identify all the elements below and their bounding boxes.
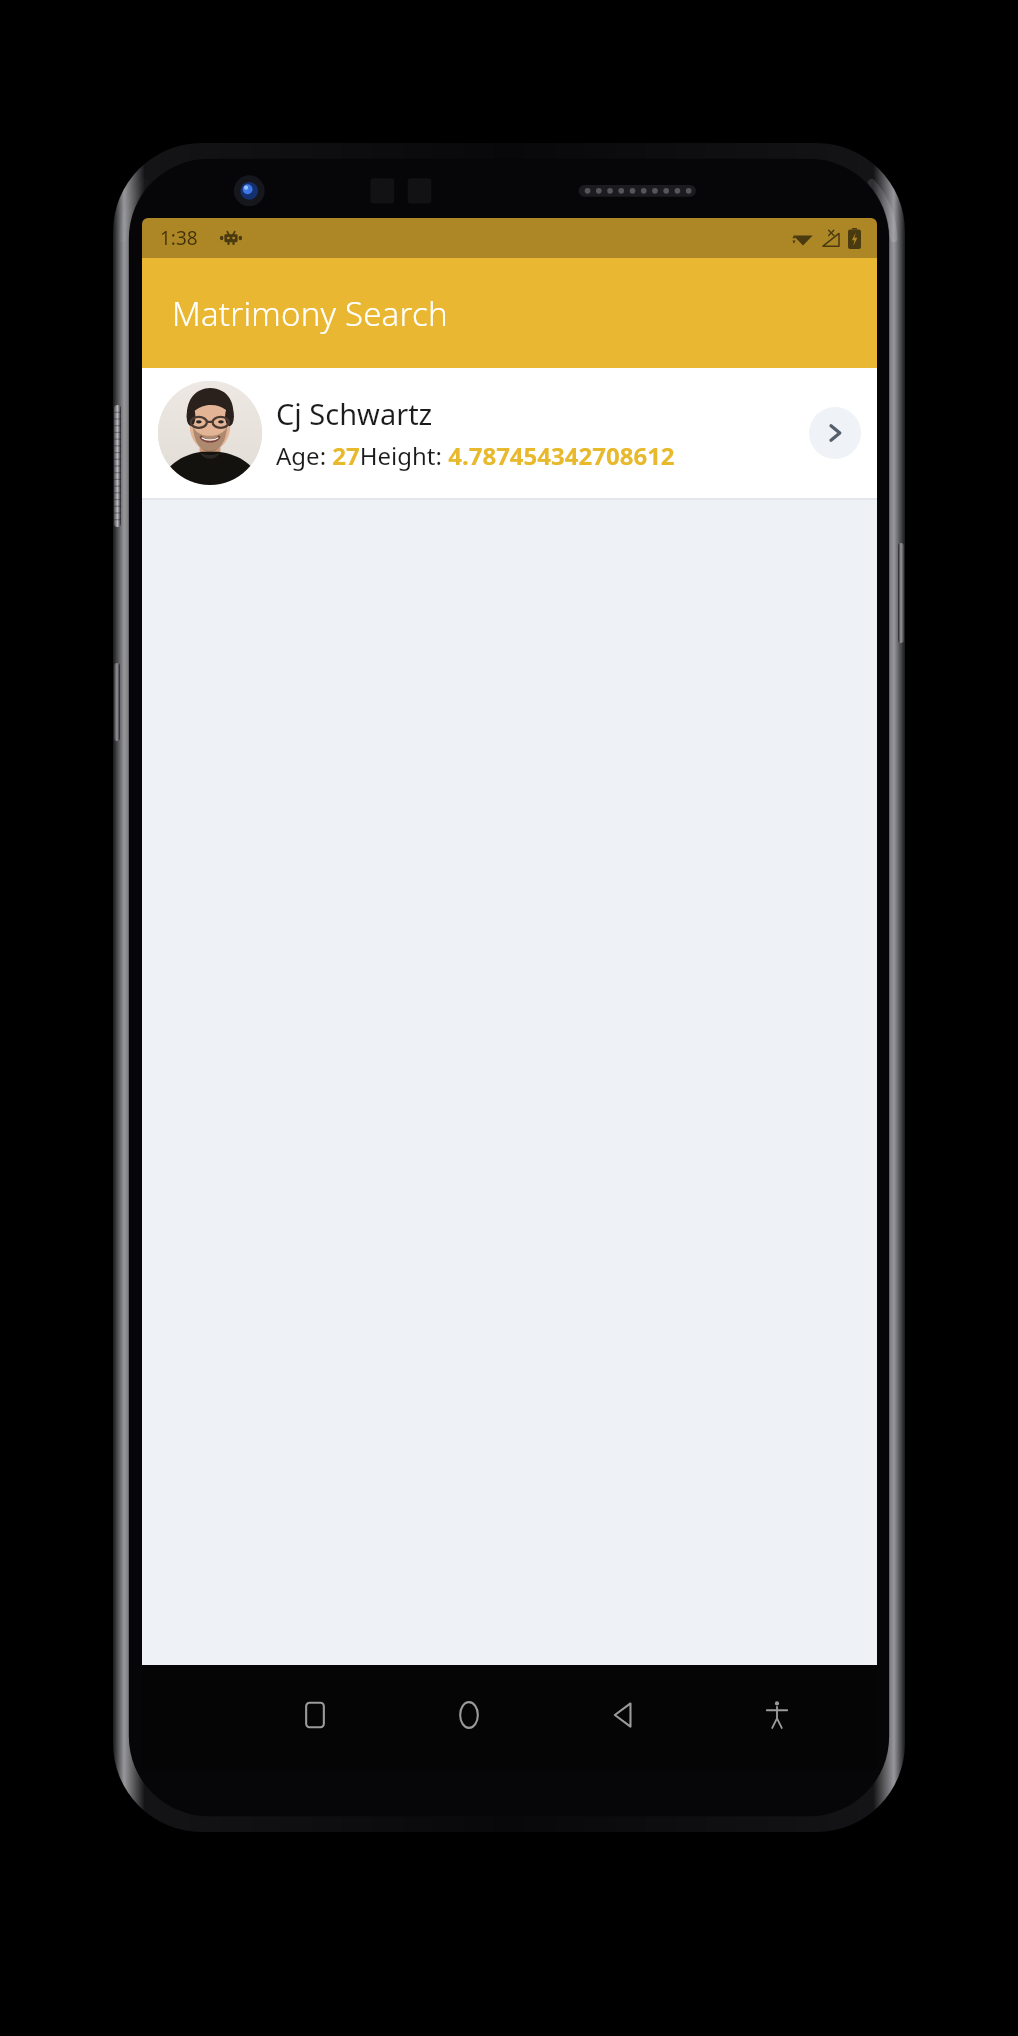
button[interactable]: Recent apps (283, 1683, 347, 1747)
button[interactable]: Home (437, 1683, 501, 1747)
button[interactable]: Back (591, 1683, 655, 1747)
staticText: 1:38 (160, 225, 198, 251)
button[interactable]: View profile details (809, 407, 861, 459)
staticText: Age: 27Height: 4.787454342708612 (276, 439, 675, 472)
button[interactable]: Accessibility (745, 1683, 809, 1747)
staticText: Cj Schwartz (276, 394, 433, 433)
staticText: Matrimony Search (172, 291, 448, 336)
button[interactable]: Cj Schwartz (142, 368, 877, 498)
